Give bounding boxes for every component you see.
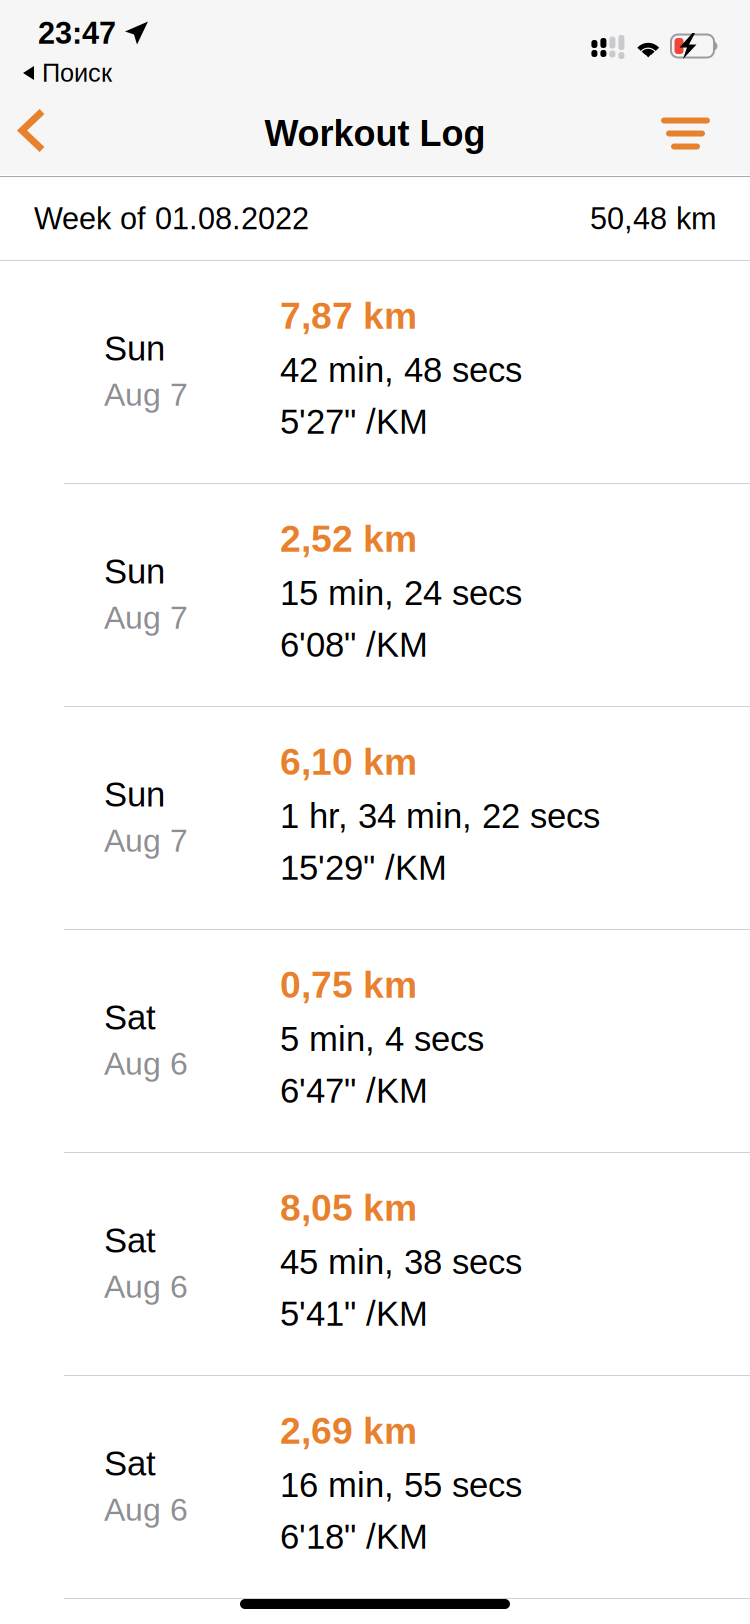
staticText: 7,87 km: [280, 295, 417, 337]
staticText: 1 hr, 34 min, 22 secs: [280, 797, 600, 835]
staticText: 2,52 km: [280, 518, 417, 560]
staticText: 16 min, 55 secs: [280, 1466, 522, 1504]
staticText: Aug 7: [104, 823, 188, 858]
staticText: Workout Log: [264, 113, 485, 154]
staticText: 5 min, 4 secs: [280, 1020, 484, 1058]
staticText: 0,75 km: [280, 964, 417, 1006]
staticText: 5'41" /KM: [280, 1294, 428, 1333]
staticText: 23:47: [38, 16, 116, 50]
staticText: Sun: [104, 775, 165, 814]
staticText: Sat: [104, 1444, 156, 1483]
staticText: Aug 7: [104, 600, 188, 635]
button[interactable]: Sun: [0, 707, 750, 930]
button[interactable]: Sat: [0, 930, 750, 1153]
staticText: Sun: [104, 552, 165, 591]
staticText: 6'18" /KM: [280, 1517, 428, 1556]
staticText: Sat: [104, 998, 156, 1037]
staticText: 6'08" /KM: [280, 625, 428, 664]
staticText: Aug 7: [104, 377, 188, 412]
staticText: 8,05 km: [280, 1187, 417, 1229]
staticText: Поиск: [42, 59, 112, 87]
staticText: 50,48 km: [590, 201, 717, 236]
button[interactable]: Sun: [0, 261, 750, 484]
staticText: Aug 6: [104, 1492, 188, 1527]
staticText: 6'47" /KM: [280, 1071, 428, 1110]
button[interactable]: Sun: [0, 484, 750, 707]
button[interactable]: Back: [0, 91, 70, 175]
staticText: Aug 6: [104, 1269, 188, 1304]
staticText: 6,10 km: [280, 741, 417, 783]
staticText: 42 min, 48 secs: [280, 351, 522, 389]
button[interactable]: Sat: [0, 1376, 750, 1599]
staticText: Sat: [104, 1221, 156, 1260]
staticText: 15 min, 24 secs: [280, 574, 522, 612]
staticText: Aug 6: [104, 1046, 188, 1081]
staticText: 5'27" /KM: [280, 402, 428, 441]
staticText: Week of 01.08.2022: [34, 201, 309, 236]
staticText: Sun: [104, 329, 165, 368]
staticText: 15'29" /KM: [280, 848, 447, 887]
staticText: 2,69 km: [280, 1410, 417, 1452]
button[interactable]: Filter: [643, 91, 750, 175]
button[interactable]: Sat: [0, 1153, 750, 1376]
staticText: 45 min, 38 secs: [280, 1243, 522, 1281]
